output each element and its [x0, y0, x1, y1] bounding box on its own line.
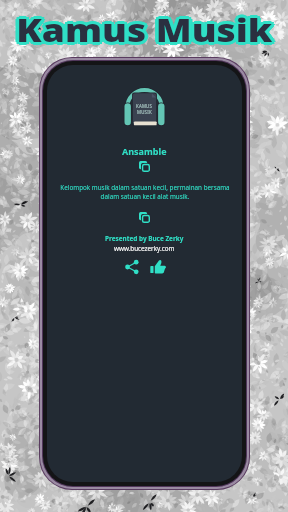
staticText: www.bucezerky.com [114, 244, 175, 253]
staticText: Ansamble [122, 145, 167, 157]
staticText: Kamus Musik [13, 8, 269, 52]
staticText: Kamus Musik [16, 5, 273, 49]
staticText: Kamus Musik [19, 6, 275, 50]
staticText: Kamus Musik [15, 10, 272, 54]
staticText: Kamus Musik [16, 11, 273, 55]
staticText: MUSIK [137, 109, 152, 115]
staticText: Kamus Musik [19, 10, 275, 54]
staticText: Kamus Musik [19, 7, 275, 51]
button[interactable]: Copy definition [133, 206, 155, 228]
staticText: Kelompok musik dalam satuan kecil, perma… [60, 183, 230, 201]
staticText: Kamus Musik [14, 9, 270, 53]
staticText: Kamus Musik [16, 8, 273, 52]
staticText: Kamus Musik [14, 6, 270, 50]
staticText: Kamus Musik [19, 6, 275, 50]
staticText: Kamus Musik [14, 10, 270, 54]
staticText: Kamus Musik [17, 10, 274, 54]
staticText: Kamus Musik [15, 6, 272, 50]
staticText: Presented by Buce Zerky [105, 234, 184, 243]
staticText: Kamus Musik [19, 9, 275, 53]
staticText: Kamus Musik [19, 10, 275, 54]
button[interactable]: Like [147, 256, 169, 278]
button[interactable]: Share [121, 256, 143, 278]
staticText: Kamus Musik [17, 6, 274, 50]
staticText: KAMUS [136, 103, 153, 109]
staticText: Kamus Musik [14, 7, 270, 51]
staticText: Kamus Musik [14, 6, 270, 50]
staticText: Kamus Musik [20, 8, 276, 52]
button[interactable]: Copy word [133, 155, 155, 177]
staticText: Kamus Musik [14, 10, 270, 54]
